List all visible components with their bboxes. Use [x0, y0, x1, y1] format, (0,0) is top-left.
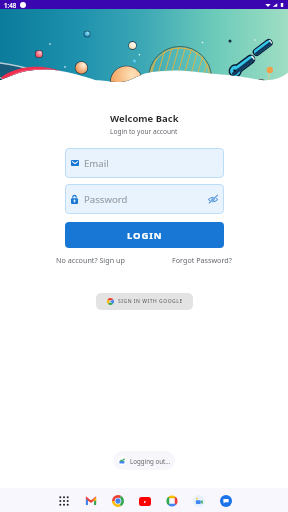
button[interactable]: Meet [192, 494, 205, 507]
button[interactable]: Password [65, 184, 224, 214]
button[interactable]: Email [65, 148, 224, 178]
button[interactable]: All apps [57, 494, 70, 507]
staticText: Welcome Back [110, 112, 179, 125]
button[interactable]: SIGN IN WITH GOOGLE [96, 293, 193, 310]
staticText: Login to your account [110, 127, 178, 136]
button[interactable]: Gmail [84, 494, 97, 507]
staticText: Password [84, 193, 128, 206]
button[interactable]: LOGIN [65, 222, 224, 248]
button[interactable]: Photos [165, 494, 178, 507]
staticText: 1:48 [4, 1, 17, 9]
staticText: SIGN IN WITH GOOGLE [118, 298, 183, 305]
staticText: LOGIN [127, 229, 163, 242]
button[interactable]: No account? Sign up [56, 255, 125, 265]
button[interactable]: Chrome [111, 494, 124, 507]
button[interactable]: Messages [219, 494, 232, 507]
staticText: Email [84, 157, 109, 170]
button[interactable]: YouTube [138, 494, 151, 507]
button[interactable]: Forgot Password? [172, 255, 232, 265]
staticText: Logging out... [130, 457, 171, 465]
